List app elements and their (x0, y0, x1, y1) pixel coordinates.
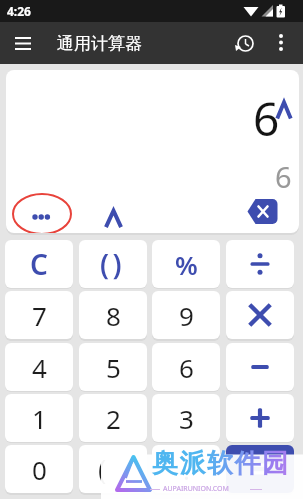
button[interactable] (99, 203, 129, 233)
button[interactable]: () (79, 240, 147, 288)
button[interactable]: ( (79, 445, 147, 493)
staticText: 0 (32, 452, 47, 487)
staticText: 6 (275, 157, 292, 196)
button[interactable]: 9 (152, 291, 220, 339)
button[interactable]: 7 (5, 291, 73, 339)
staticText: 7 (32, 298, 47, 333)
staticText: 2 (106, 401, 121, 436)
staticText: 4 (32, 350, 47, 385)
button[interactable]: 5 (79, 343, 147, 391)
staticText: 8 (106, 298, 121, 333)
staticText: 6 (253, 87, 280, 150)
button[interactable] (226, 445, 294, 493)
button[interactable]: 1 (5, 394, 73, 442)
button[interactable]: 2 (79, 394, 147, 442)
staticText: 4:26 (7, 3, 31, 19)
button[interactable]: 3 (152, 394, 220, 442)
staticText: . (183, 452, 190, 487)
staticText: C (30, 245, 48, 283)
button[interactable] (228, 26, 262, 60)
staticText: () (100, 245, 126, 283)
staticText: 奥派软件园 (152, 447, 290, 480)
staticText: 6 (179, 350, 194, 385)
button[interactable] (0, 22, 42, 64)
staticText: ( (98, 450, 107, 488)
staticText: AUPAIRUNION.COM (163, 484, 229, 494)
button[interactable] (266, 26, 298, 60)
button[interactable] (226, 394, 294, 442)
button[interactable] (21, 202, 71, 232)
button[interactable]: . (152, 445, 220, 493)
staticText: 1 (32, 401, 47, 436)
staticText: 5 (106, 350, 121, 385)
button[interactable]: 6 (152, 343, 220, 391)
staticText: 3 (179, 401, 194, 436)
button[interactable]: C (5, 240, 73, 288)
button[interactable] (226, 343, 294, 391)
button[interactable]: 8 (79, 291, 147, 339)
button[interactable] (226, 291, 294, 339)
staticText: 9 (179, 298, 194, 333)
button[interactable]: 4 (5, 343, 73, 391)
button[interactable] (244, 194, 284, 229)
staticText: % (175, 247, 198, 282)
button[interactable]: % (152, 240, 220, 288)
button[interactable] (226, 240, 294, 288)
button[interactable]: 0 (5, 445, 73, 493)
staticText: 通用计算器 (57, 33, 142, 54)
